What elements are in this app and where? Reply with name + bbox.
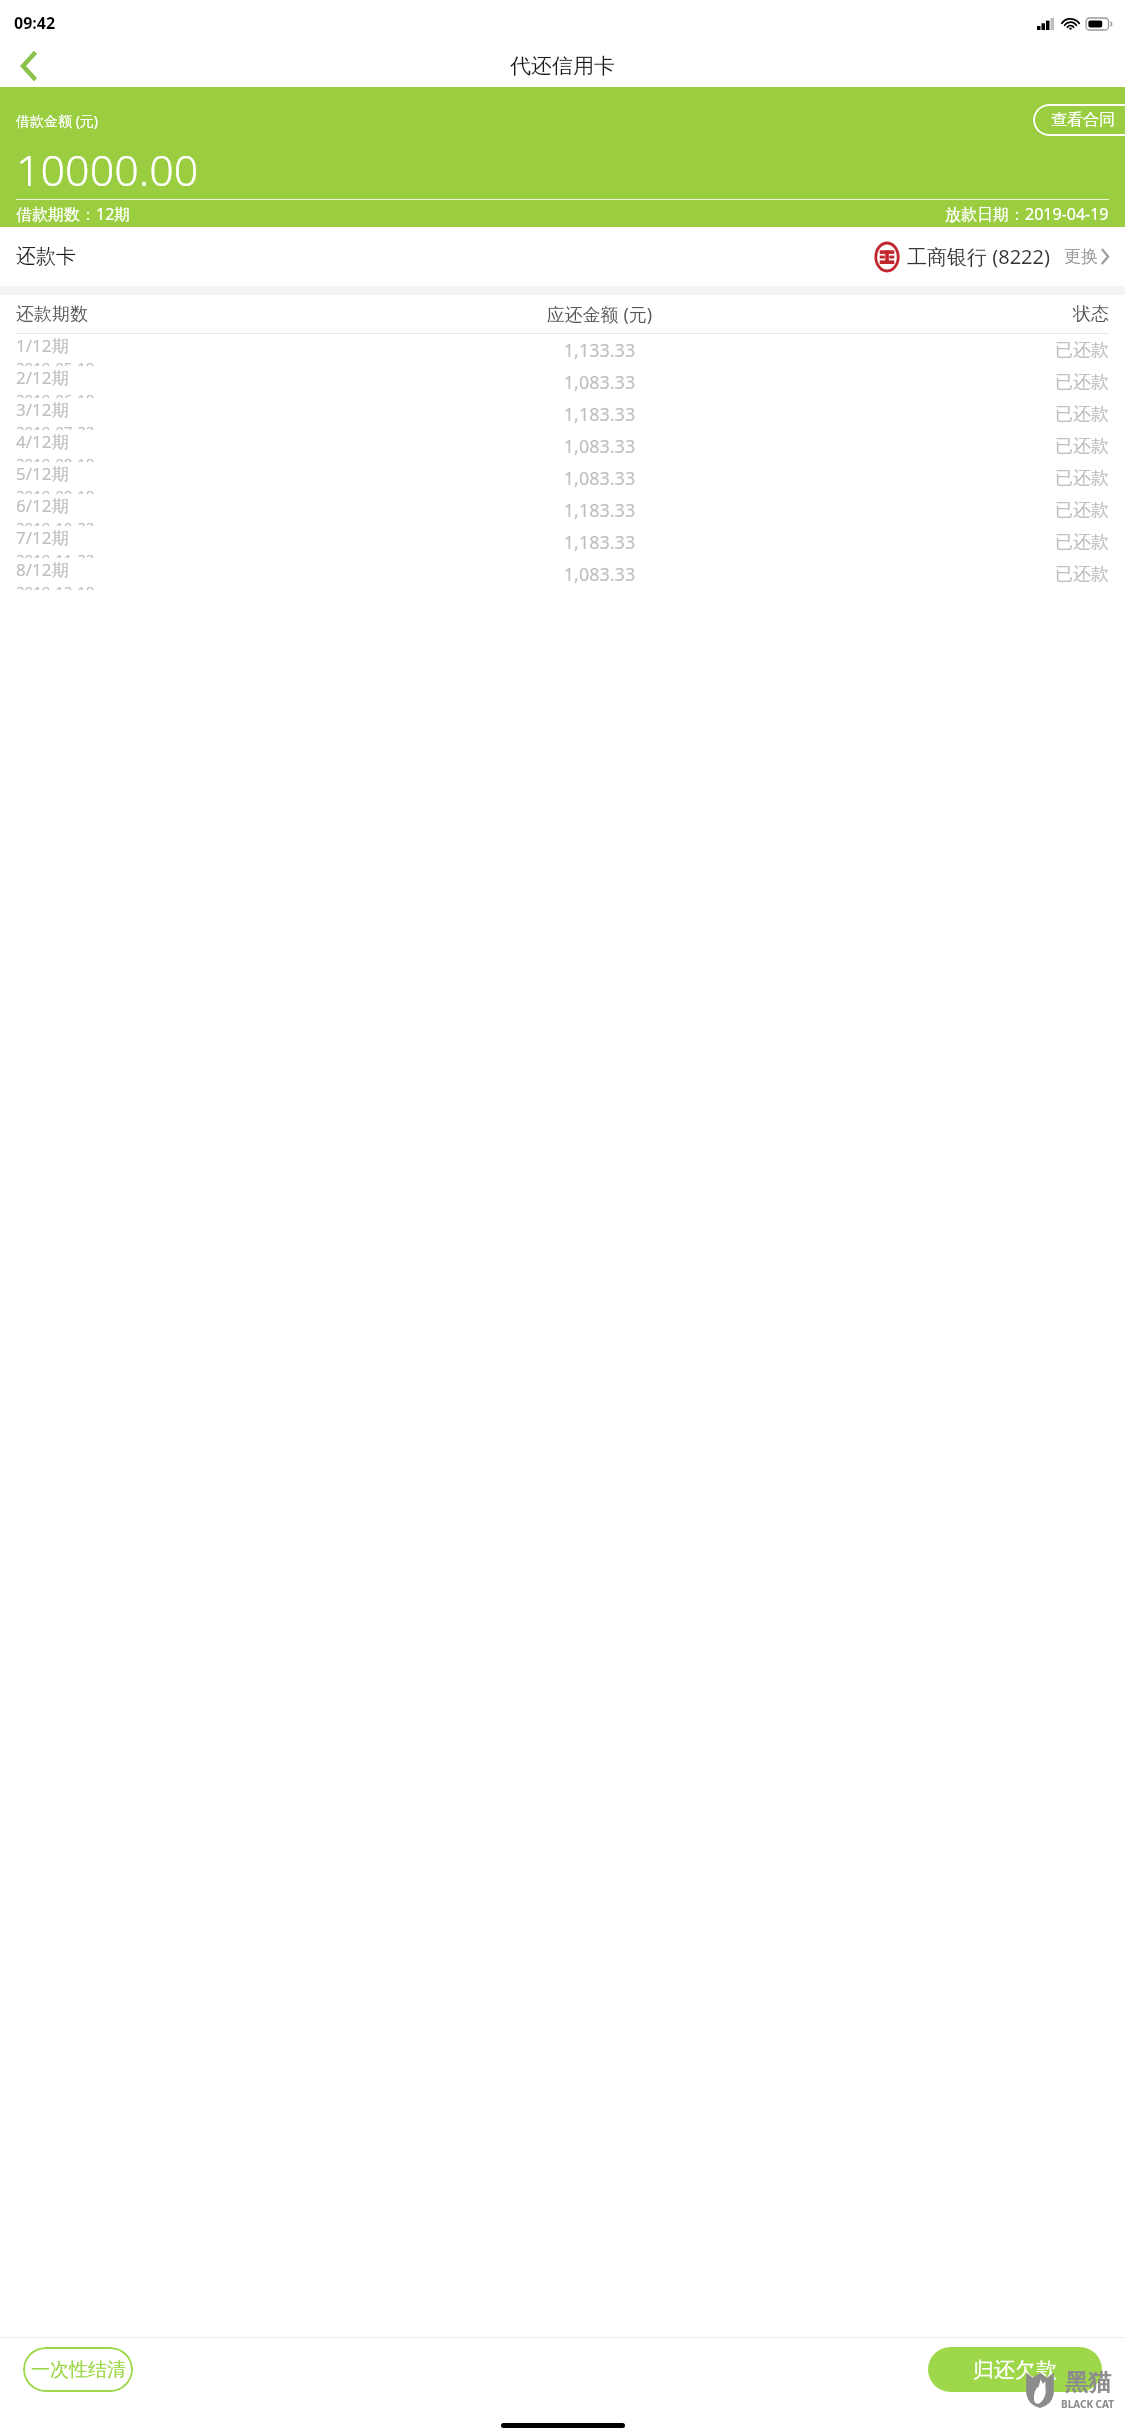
- staticText: 查看合同: [1051, 110, 1115, 130]
- staticText: 应还金额 (元): [381, 302, 818, 327]
- staticText: 1,083.33: [381, 562, 818, 587]
- button[interactable]: 归还欠款: [928, 2347, 1102, 2392]
- staticText: BLACK CAT: [1061, 2397, 1115, 2411]
- button[interactable]: 1/12期: [0, 334, 1125, 366]
- button[interactable]: 3/12期: [0, 398, 1125, 430]
- staticText: 借款期数：12期: [16, 203, 131, 225]
- staticText: 更换: [1064, 246, 1098, 267]
- staticText: 已还款: [818, 371, 1109, 394]
- button[interactable]: 7/12期: [0, 526, 1125, 558]
- staticText: 1,183.33: [381, 530, 818, 555]
- button[interactable]: 一次性结清: [23, 2347, 133, 2392]
- staticText: 一次性结清: [31, 2358, 126, 2382]
- staticText: 7/12期: [16, 526, 69, 549]
- staticText: 1,083.33: [381, 370, 818, 395]
- staticText: 已还款: [818, 403, 1109, 426]
- staticText: 1,133.33: [381, 338, 818, 363]
- staticText: 10000.00: [16, 140, 199, 199]
- button[interactable]: 8/12期: [0, 558, 1125, 590]
- staticText: 已还款: [818, 339, 1109, 362]
- button[interactable]: 4/12期: [0, 430, 1125, 462]
- staticText: 2019-08-18: [16, 453, 95, 462]
- staticText: 2/12期: [16, 366, 69, 389]
- staticText: 已还款: [818, 467, 1109, 490]
- staticText: 已还款: [818, 563, 1109, 586]
- staticText: 借款金额 (元): [16, 111, 99, 130]
- staticText: 放款日期：2019-04-19: [945, 203, 1109, 225]
- staticText: 状态: [818, 303, 1109, 326]
- staticText: 还款卡: [16, 244, 76, 269]
- staticText: 6/12期: [16, 494, 69, 517]
- staticText: 2019-11-22: [16, 549, 95, 558]
- staticText: 1,183.33: [381, 402, 818, 427]
- button[interactable]: 查看合同: [1033, 104, 1125, 136]
- staticText: 已还款: [818, 531, 1109, 554]
- staticText: 4/12期: [16, 430, 69, 453]
- staticText: 09:42: [14, 12, 56, 34]
- staticText: 1,083.33: [381, 434, 818, 459]
- staticText: 2019-10-22: [16, 517, 95, 526]
- staticText: 代还信用卡: [510, 53, 615, 79]
- staticText: 归还欠款: [973, 2357, 1057, 2383]
- button[interactable]: 还款卡: [0, 227, 1125, 286]
- staticText: 1/12期: [16, 334, 69, 357]
- staticText: 已还款: [818, 435, 1109, 458]
- button[interactable]: 6/12期: [0, 494, 1125, 526]
- button[interactable]: 5/12期: [0, 462, 1125, 494]
- staticText: 1,183.33: [381, 498, 818, 523]
- staticText: 3/12期: [16, 398, 69, 421]
- staticText: 工商银行 (8222): [907, 243, 1050, 270]
- staticText: 2019-07-22: [16, 421, 95, 430]
- staticText: 8/12期: [16, 558, 69, 581]
- button[interactable]: Back: [0, 44, 56, 87]
- staticText: 还款期数: [16, 303, 381, 326]
- staticText: 已还款: [818, 499, 1109, 522]
- staticText: 2019-06-18: [16, 389, 95, 398]
- staticText: 2019-12-18: [16, 581, 95, 590]
- staticText: 5/12期: [16, 462, 69, 485]
- staticText: 1,083.33: [381, 466, 818, 491]
- staticText: 黑猫: [1065, 2368, 1111, 2397]
- button[interactable]: 2/12期: [0, 366, 1125, 398]
- staticText: 2019-09-18: [16, 485, 95, 494]
- staticText: 2019-05-19: [16, 357, 95, 366]
